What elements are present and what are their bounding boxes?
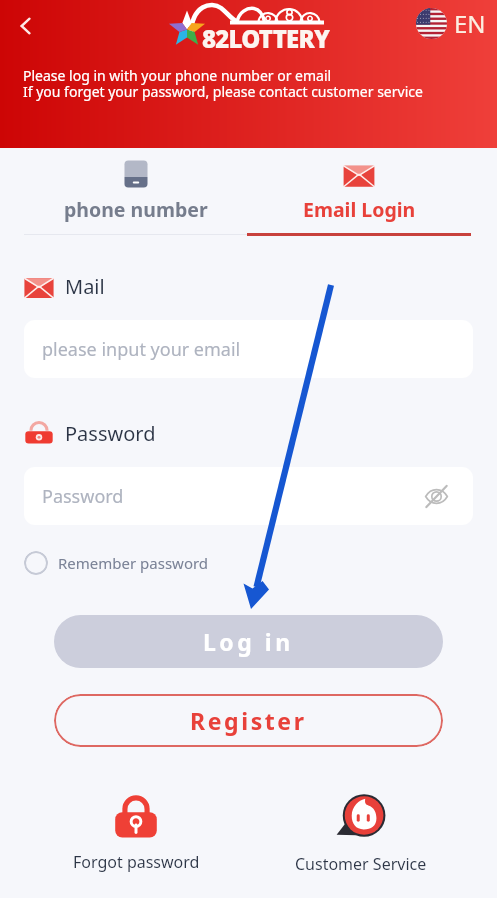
staticText: phone number xyxy=(64,196,208,223)
button[interactable]: EN xyxy=(416,7,486,40)
button[interactable]: phone number xyxy=(24,148,247,233)
button[interactable]: Forgot password xyxy=(61,790,211,873)
staticText: Email Login xyxy=(303,196,416,223)
button[interactable]: Customer Service xyxy=(286,790,436,875)
button[interactable]: Email Login xyxy=(247,148,471,233)
staticText: Forgot password xyxy=(73,851,200,873)
staticText: Log in xyxy=(203,626,294,657)
staticText: Register xyxy=(190,705,307,736)
button[interactable]: Show password xyxy=(421,481,451,511)
staticText: please input your email xyxy=(42,337,241,362)
staticText: Password xyxy=(65,420,156,447)
staticText: Remember password xyxy=(58,553,209,573)
button[interactable]: Back xyxy=(8,8,44,44)
staticText: Customer Service xyxy=(295,853,427,875)
staticText: Mail xyxy=(65,273,105,300)
staticText: EN xyxy=(454,7,486,40)
button[interactable]: please input your email xyxy=(24,320,473,378)
button[interactable]: Register xyxy=(54,694,443,747)
staticText: Password xyxy=(42,484,124,509)
staticText: 82LOTTERY xyxy=(202,22,330,55)
staticText: Please log in with your phone number or … xyxy=(23,66,423,101)
button[interactable]: Password xyxy=(24,467,473,525)
button[interactable]: Remember password xyxy=(24,551,209,575)
button[interactable]: Log in xyxy=(54,615,443,668)
